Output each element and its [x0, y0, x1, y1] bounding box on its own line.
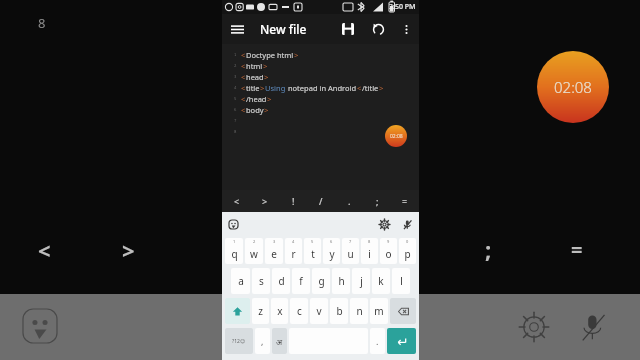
staticText: f [299, 274, 303, 288]
staticText: 9 [387, 239, 390, 244]
button[interactable]: Key [390, 298, 416, 324]
button[interactable]: s [252, 268, 270, 294]
staticText: 1 [234, 52, 237, 57]
staticText: > [122, 235, 135, 265]
button[interactable]: h [332, 268, 350, 294]
staticText: o [385, 247, 392, 261]
button[interactable]: n [350, 298, 368, 324]
staticText: e [271, 247, 277, 261]
staticText: t [311, 247, 315, 261]
button[interactable]: ; [363, 190, 391, 212]
button[interactable]: 7 [342, 238, 359, 264]
staticText: 8 [38, 14, 46, 32]
button[interactable]: / [307, 190, 335, 212]
staticText: n [356, 304, 363, 318]
button[interactable]: k [372, 268, 390, 294]
button[interactable]: . [335, 190, 363, 212]
button[interactable]: m [370, 298, 388, 324]
button[interactable]: c [290, 298, 308, 324]
staticText: head [246, 72, 264, 82]
staticText: > [260, 83, 265, 93]
button[interactable]: b [330, 298, 348, 324]
staticText: = [402, 195, 408, 207]
staticText: < [234, 195, 240, 207]
button[interactable]: ?12☺ [225, 328, 253, 354]
staticText: ; [376, 195, 379, 207]
staticText: < [241, 61, 246, 71]
staticText: 7 [349, 239, 352, 244]
button[interactable]: 3 [265, 238, 283, 264]
button[interactable]: f [292, 268, 310, 294]
staticText: q [231, 247, 238, 261]
staticText: z [258, 304, 263, 318]
button[interactable]: x [271, 298, 288, 324]
button[interactable]: l [392, 268, 410, 294]
staticText: . [376, 335, 379, 347]
staticText: > [263, 61, 268, 71]
button[interactable]: > [251, 190, 279, 212]
staticText: = [571, 236, 583, 263]
button[interactable]: Microphone off [402, 219, 413, 230]
staticText: 5 [311, 239, 314, 244]
staticText: Using [265, 83, 286, 93]
button[interactable]: g [312, 268, 330, 294]
staticText: x [277, 304, 283, 318]
button[interactable]: More options [393, 16, 419, 42]
staticText: 0 [406, 239, 409, 244]
staticText: /head [246, 94, 267, 104]
button[interactable]: z [252, 298, 269, 324]
button[interactable]: 4 [285, 238, 302, 264]
staticText: < [241, 72, 246, 82]
staticText: 3 [234, 74, 237, 79]
staticText: > [262, 195, 268, 207]
button[interactable]: Save [333, 14, 363, 44]
button[interactable]: v [310, 298, 328, 324]
button[interactable]: Undo [363, 14, 393, 44]
staticText: body [246, 105, 264, 115]
button[interactable]: < [222, 190, 251, 212]
button[interactable]: Settings [379, 219, 390, 230]
button[interactable]: अ [272, 328, 287, 354]
button[interactable]: Enter [387, 328, 416, 354]
staticText: p [404, 247, 411, 261]
staticText: < [38, 235, 51, 265]
button[interactable]: 5 [304, 238, 321, 264]
button[interactable]: Emoji [228, 219, 239, 230]
staticText: New file [260, 21, 333, 37]
button[interactable]: 8 [361, 238, 378, 264]
button[interactable]: d [272, 268, 290, 294]
staticText: > [264, 72, 269, 82]
staticText: a [238, 274, 244, 288]
button[interactable]: 6 [323, 238, 340, 264]
button[interactable]: ! [279, 190, 307, 212]
staticText: 02:08 [554, 77, 592, 97]
staticText: > [379, 83, 384, 93]
staticText: ! [292, 195, 295, 207]
staticText: k [378, 274, 384, 288]
staticText: /title [362, 83, 379, 93]
button[interactable]: Key [225, 298, 250, 324]
button[interactable]: = [391, 190, 419, 212]
button[interactable]: . [370, 328, 385, 354]
button[interactable]: 9 [380, 238, 397, 264]
button[interactable]: 0 [399, 238, 416, 264]
staticText: < [357, 83, 362, 93]
button[interactable]: 1 [225, 238, 243, 264]
button[interactable]: a [231, 268, 250, 294]
staticText: 2 [253, 239, 256, 244]
button[interactable]: Timer 02:08 [385, 125, 407, 147]
staticText: 6 [330, 239, 333, 244]
staticText: i [368, 247, 371, 261]
staticText: 7 [234, 118, 237, 123]
staticText: d [278, 274, 285, 288]
staticText: g [318, 274, 325, 288]
staticText: 6 [234, 107, 237, 112]
button[interactable]: 2 [245, 238, 263, 264]
staticText: ?12☺ [232, 338, 246, 345]
staticText: < [241, 83, 246, 93]
button[interactable]: Menu [222, 14, 252, 44]
staticText: m [374, 304, 384, 318]
button[interactable]: j [352, 268, 370, 294]
button[interactable]: , [255, 328, 270, 354]
